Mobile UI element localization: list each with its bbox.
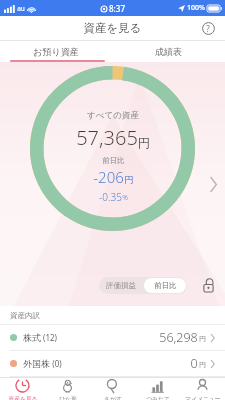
staticText: つみたて [146,395,170,400]
staticText: -0.35 [99,190,122,204]
staticText: (12) [43,332,57,343]
staticText: 100% [187,3,205,13]
staticText: (0) [52,358,62,369]
button[interactable]: Unlock [199,276,217,294]
staticText: 56,298 [159,329,198,346]
staticText: さがす [104,395,122,400]
staticText: 資産を見る [8,395,38,400]
button[interactable]: お預り資産 [0,41,112,62]
staticText: ひな形 [59,395,77,400]
button[interactable]: 評価損益 [99,277,187,294]
button[interactable]: 株式 [0,325,225,350]
staticText: 株式 [23,332,41,343]
staticText: 資産内訳 [10,311,40,320]
staticText: 前日比 [102,156,125,165]
staticText: -206 [93,167,124,187]
staticText: 前日比 [154,281,177,290]
staticText: 8:37 [109,3,125,14]
staticText: % [122,193,128,203]
staticText: お預り資産 [33,46,79,57]
staticText: 外国株 [23,358,50,369]
button[interactable]: ひな形 [45,378,90,400]
staticText: 円 [199,335,206,343]
staticText: 資産を見る [83,21,142,35]
button[interactable]: Next [203,169,223,199]
staticText: 成績表 [155,46,182,57]
staticText: au [17,4,25,13]
staticText: ? [206,23,210,34]
button[interactable]: さがす [90,378,135,400]
button[interactable]: 前日比 [144,278,186,293]
staticText: 円 [138,135,150,150]
button[interactable]: マイメニュー [180,378,225,400]
staticText: 評価損益 [106,281,136,290]
button[interactable]: つみたて [135,378,180,400]
button[interactable]: 外国株 [0,351,225,376]
button[interactable]: Help [199,19,217,37]
staticText: すべての資産 [87,110,139,121]
button[interactable]: 評価損益 [99,277,143,294]
staticText: マイメニュー [185,395,221,400]
staticText: 0 [190,355,198,372]
staticText: 57,365 [76,124,138,151]
staticText: 円 [124,174,134,186]
button[interactable]: 資産を見る [0,378,45,400]
button[interactable]: 成績表 [112,41,225,62]
staticText: 円 [199,361,206,369]
